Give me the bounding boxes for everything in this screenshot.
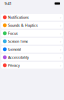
staticText: ›: [60, 39, 61, 44]
button[interactable]: Accessibility: [1, 54, 63, 61]
staticText: General: [8, 47, 21, 52]
button[interactable]: Screen Time: [1, 38, 63, 45]
staticText: ›: [60, 31, 61, 36]
staticText: Screen Time: [8, 39, 28, 44]
staticText: Accessibility: [8, 55, 29, 60]
staticText: Focus: [8, 31, 18, 36]
staticText: ›: [60, 23, 61, 28]
button[interactable]: Focus: [1, 30, 63, 37]
button[interactable]: Sounds & Haptics: [1, 22, 63, 29]
staticText: ›: [60, 47, 61, 52]
button[interactable]: Notifications: [1, 14, 63, 21]
staticText: 9:41: [4, 1, 11, 6]
staticText: Sounds & Haptics: [8, 23, 38, 28]
staticText: ›: [60, 55, 61, 60]
staticText: Privacy: [8, 63, 20, 68]
staticText: ›: [60, 15, 61, 20]
button[interactable]: Privacy: [1, 62, 63, 69]
button[interactable]: General: [1, 46, 63, 53]
staticText: Notifications: [8, 15, 29, 20]
staticText: ›: [60, 63, 61, 68]
